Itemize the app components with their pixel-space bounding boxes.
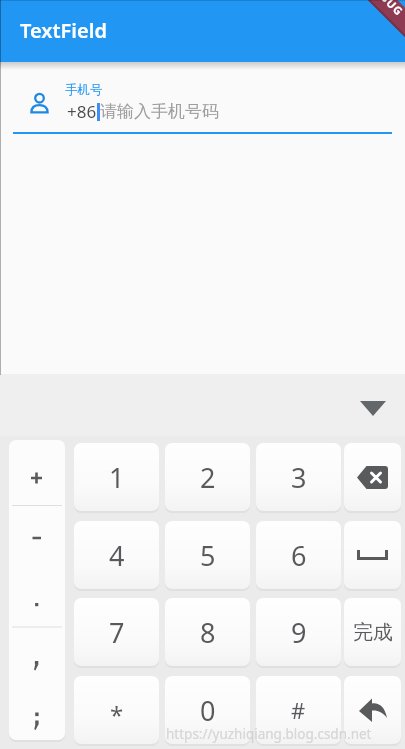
staticText: 8 <box>200 614 216 651</box>
staticText: 6 <box>291 537 307 574</box>
button[interactable]: 1 <box>74 443 159 511</box>
button[interactable]: 4 <box>74 521 159 589</box>
staticText: # <box>291 695 306 725</box>
button[interactable]: 3 <box>256 443 341 511</box>
staticText: 9 <box>291 614 307 651</box>
button[interactable]: 8 <box>165 598 250 666</box>
button[interactable]: +86 <box>67 100 219 123</box>
staticText: 7 <box>109 614 125 651</box>
staticText: 3 <box>291 459 307 496</box>
staticText: 手机号 <box>65 82 103 98</box>
staticText: https://yuzhiqiang.blog.csdn.net <box>166 725 372 743</box>
button[interactable]: 2 <box>165 443 250 511</box>
button[interactable]: 完成 <box>344 598 401 666</box>
button[interactable]: # <box>256 676 341 744</box>
button[interactable]: 0 <box>165 676 250 744</box>
button[interactable] <box>344 676 401 744</box>
button[interactable]: 9 <box>256 598 341 666</box>
button[interactable]: 6 <box>256 521 341 589</box>
staticText: DEBUG <box>366 0 405 19</box>
button[interactable]: 7 <box>74 598 159 666</box>
button[interactable] <box>344 443 401 511</box>
staticText: 5 <box>200 537 216 574</box>
staticText: TextField <box>20 17 107 44</box>
button[interactable] <box>344 521 401 589</box>
button[interactable] <box>9 440 65 740</box>
button[interactable]: 5 <box>165 521 250 589</box>
button[interactable]: TextField <box>0 0 405 62</box>
button[interactable] <box>347 392 399 424</box>
staticText: 1 <box>109 459 125 496</box>
staticText: +86 <box>67 100 97 123</box>
staticText: 4 <box>109 537 125 574</box>
staticText: 完成 <box>353 620 393 645</box>
button[interactable]: * <box>74 676 159 744</box>
staticText: 2 <box>200 459 216 496</box>
staticText: * <box>110 698 124 731</box>
staticText: 请输入手机号码 <box>100 101 219 122</box>
staticText: 0 <box>200 692 216 729</box>
